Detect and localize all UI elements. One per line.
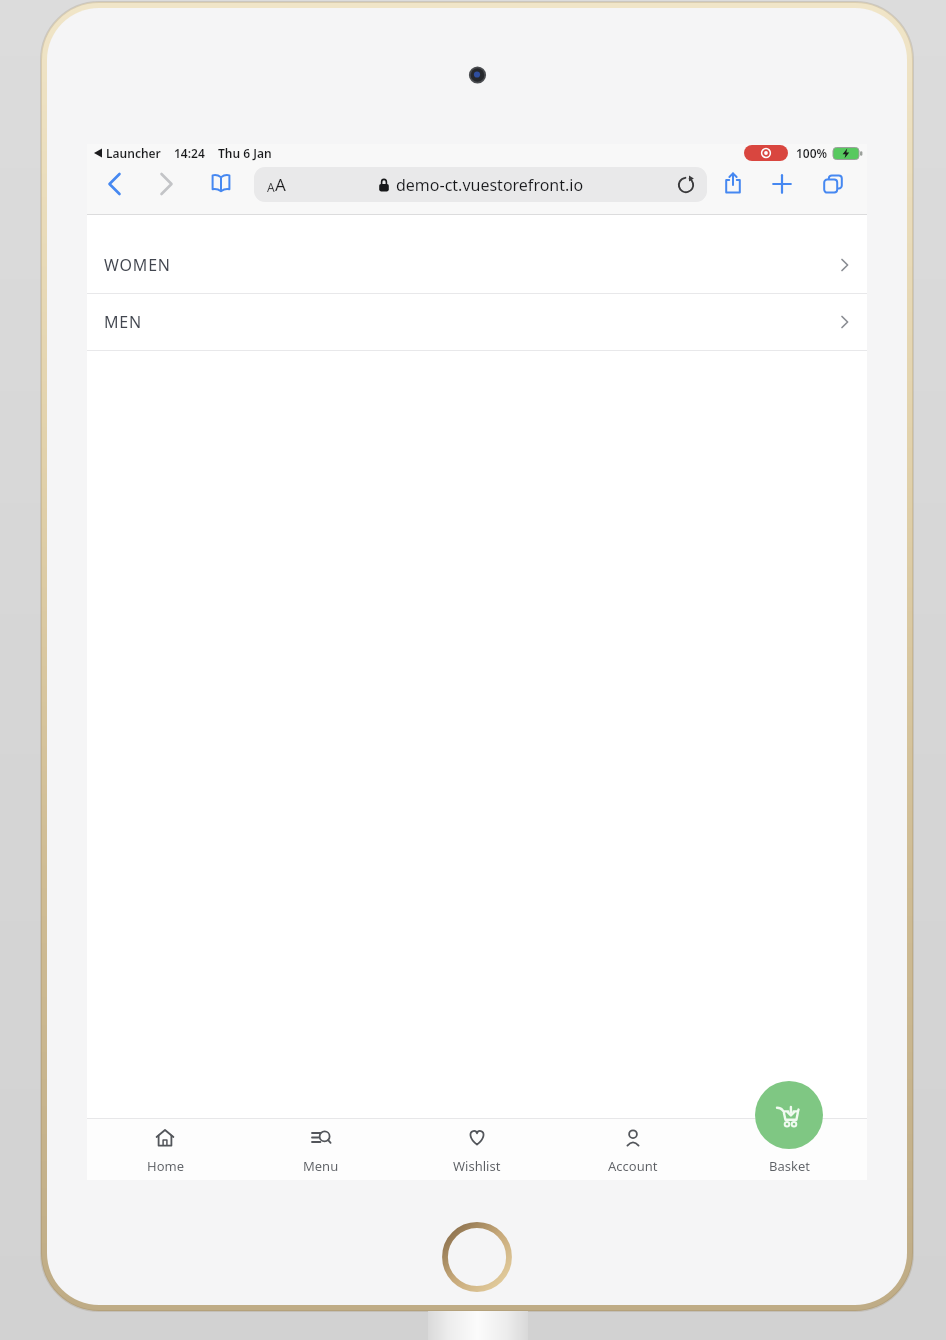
staticText: MEN bbox=[104, 311, 142, 333]
button[interactable]: Account bbox=[555, 1119, 711, 1180]
button[interactable] bbox=[209, 172, 233, 196]
staticText: Basket bbox=[769, 1157, 810, 1175]
staticText: demo-ct.vuestorefront.io bbox=[396, 174, 584, 196]
button[interactable] bbox=[755, 1081, 823, 1149]
button[interactable]: Home bbox=[87, 1119, 243, 1180]
staticText: Wishlist bbox=[453, 1157, 501, 1175]
button[interactable]: Menu bbox=[243, 1119, 399, 1180]
button[interactable]: MEN bbox=[87, 294, 867, 350]
staticText: Account bbox=[608, 1157, 658, 1175]
button[interactable] bbox=[154, 172, 178, 196]
staticText: A bbox=[275, 173, 286, 196]
button[interactable] bbox=[676, 175, 696, 195]
button[interactable] bbox=[103, 172, 127, 196]
staticText: A bbox=[267, 179, 275, 195]
button[interactable]: A bbox=[254, 167, 707, 202]
staticText: Home bbox=[147, 1157, 184, 1175]
button[interactable] bbox=[770, 172, 794, 196]
staticText: 14:24 bbox=[174, 145, 205, 161]
button[interactable]: WOMEN bbox=[87, 237, 867, 293]
staticText: Launcher bbox=[106, 145, 161, 161]
staticText: Thu 6 Jan bbox=[218, 145, 272, 161]
staticText: WOMEN bbox=[104, 254, 171, 276]
button[interactable] bbox=[721, 171, 745, 195]
staticText: 100% bbox=[796, 145, 828, 161]
button[interactable]: Wishlist bbox=[399, 1119, 555, 1180]
button[interactable]: Basket bbox=[711, 1119, 867, 1180]
button[interactable] bbox=[821, 172, 845, 196]
staticText: Menu bbox=[303, 1157, 339, 1175]
